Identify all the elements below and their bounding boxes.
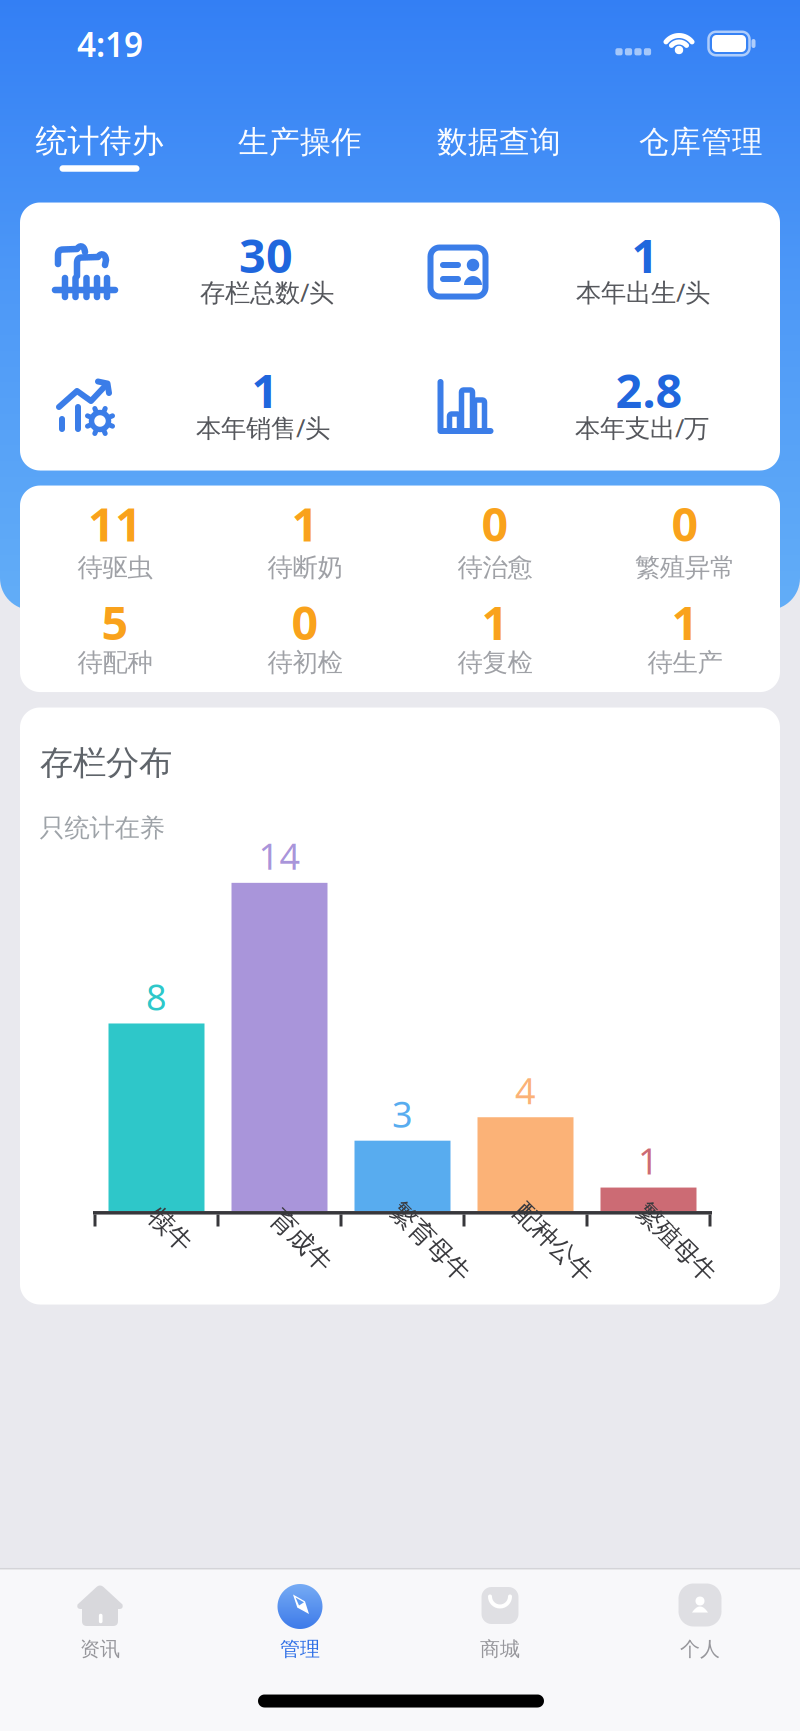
staticText: 仓库管理 (639, 123, 763, 161)
staticText: 1 (291, 492, 318, 554)
staticText: 管理 (280, 1637, 320, 1661)
staticText: 统计待办 (35, 121, 163, 161)
staticText: 8 (146, 973, 167, 1020)
button[interactable]: 数据查询 (437, 123, 561, 161)
staticText: 配种公牛 (504, 1227, 604, 1258)
staticText: 4 (515, 1066, 536, 1114)
staticText: 待生产 (647, 647, 722, 678)
staticText: 只统计在养 (39, 812, 164, 843)
staticText: 待初检 (267, 647, 342, 678)
staticText: 育成牛 (264, 1225, 339, 1256)
staticText: 待断奶 (267, 552, 342, 583)
staticText: 生产操作 (238, 123, 362, 161)
staticText: 0 (671, 492, 698, 554)
staticText: 1 (631, 224, 658, 286)
staticText: 待治愈 (457, 552, 532, 583)
button[interactable]: 商城 (425, 1570, 575, 1670)
staticText: 商城 (480, 1637, 520, 1661)
staticText: 本年出生/头 (576, 275, 710, 309)
staticText: 2.8 (615, 359, 682, 421)
staticText: 繁殖母牛 (627, 1227, 727, 1258)
staticText: 5 (101, 591, 128, 653)
button[interactable]: 统计待办 (35, 121, 163, 161)
staticText: 资讯 (80, 1637, 120, 1661)
staticText: 1 (638, 1137, 659, 1184)
button[interactable]: 资讯 (25, 1570, 175, 1670)
button[interactable]: 生产操作 (238, 123, 362, 161)
staticText: 待复检 (457, 647, 532, 678)
staticText: 待驱虫 (77, 552, 152, 583)
staticText: 繁育母牛 (381, 1226, 481, 1258)
staticText: 个人 (680, 1637, 720, 1661)
staticText: 11 (88, 492, 142, 554)
staticText: 1 (481, 591, 508, 653)
staticText: 犊牛 (145, 1214, 195, 1245)
staticText: 存栏总数/头 (200, 275, 334, 309)
staticText: 繁殖异常 (635, 552, 735, 583)
staticText: 数据查询 (437, 123, 561, 161)
staticText: 0 (481, 492, 508, 554)
staticText: 本年支出/万 (575, 411, 709, 444)
staticText: 1 (671, 591, 698, 653)
button[interactable]: 管理 (225, 1570, 375, 1670)
staticText: 3 (392, 1090, 413, 1138)
button[interactable]: 仓库管理 (639, 123, 763, 161)
staticText: 30 (239, 224, 293, 286)
staticText: 4:19 (77, 22, 143, 66)
button[interactable]: 个人 (625, 1570, 775, 1670)
staticText: 待配种 (77, 647, 152, 678)
staticText: 本年销售/头 (196, 411, 330, 444)
staticText: 0 (291, 591, 318, 653)
staticText: 14 (258, 832, 300, 880)
staticText: 1 (251, 359, 278, 421)
staticText: 存栏分布 (40, 742, 172, 783)
